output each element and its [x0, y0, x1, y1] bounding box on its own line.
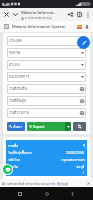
button[interactable]: Export options — [65, 122, 71, 131]
button[interactable]: Export — [27, 122, 65, 131]
button[interactable]: Navigation menu — [3, 23, 10, 30]
button[interactable]: Edit — [77, 36, 90, 49]
button[interactable]: Chat on LINE — [3, 165, 12, 174]
staticText: ชลบุรี — [76, 164, 85, 169]
button[interactable]: จังหวัด — [7, 48, 86, 58]
staticText: วันที่สิ้นสุด — [9, 98, 80, 104]
staticText: e-mis.malaria.org — [25, 16, 52, 20]
staticText: อำเภอ — [8, 171, 18, 173]
staticText: วันที่เริ่มต้น — [9, 86, 80, 92]
staticText: กรุงเทพมหานคร — [61, 157, 85, 162]
staticText: หน่วยบริการ — [9, 74, 81, 80]
staticText: จังหวัด — [8, 164, 18, 169]
button[interactable]: Open in browser — [75, 10, 84, 19]
staticText: รายชื่อ — [8, 143, 19, 148]
button[interactable]: More options — [11, 10, 20, 19]
staticText: Malaria Information System — [12, 24, 66, 29]
staticText: Export — [33, 124, 45, 129]
button[interactable]: Back — [67, 188, 79, 200]
button[interactable]: Menu — [84, 11, 91, 18]
button[interactable]: Table settings — [73, 122, 86, 131]
button[interactable]: Close — [2, 10, 11, 19]
button[interactable]: วันที่รายงาน — [7, 108, 86, 118]
button[interactable]: Language — [76, 23, 83, 30]
button[interactable]: วันที่เริ่มต้น — [7, 84, 86, 94]
button[interactable]: รายชื่อ — [6, 140, 87, 176]
staticText: ประเทศ — [9, 38, 81, 44]
staticText: วันที่รับรู้เชื้อราย — [8, 150, 32, 155]
staticText: จังหวัด — [9, 50, 81, 56]
staticText: รหัสโรค — [8, 157, 21, 162]
staticText: An unhandled error has occurred. — [2, 181, 56, 186]
button[interactable]: อำเภอ — [7, 60, 86, 70]
staticText: ชลบุรี — [76, 171, 85, 173]
staticText: Malaria Informa... — [21, 10, 57, 16]
button[interactable]: ค้นหา — [7, 122, 25, 131]
staticText: อำเภอ — [9, 62, 81, 68]
button[interactable]: Account — [83, 23, 90, 30]
staticText: วันที่รายงาน — [9, 110, 80, 116]
button[interactable]: Recent apps — [14, 188, 26, 200]
button[interactable]: ประเทศ — [7, 36, 86, 46]
button[interactable]: Home — [41, 188, 53, 200]
staticText: 1 — [83, 143, 85, 148]
button[interactable]: Reload — [57, 181, 68, 186]
staticText: 9:41 — [2, 2, 10, 7]
staticText: 20/06/2566 — [66, 150, 85, 155]
button[interactable]: วันที่สิ้นสุด — [7, 96, 86, 106]
staticText: ค้นหา — [13, 124, 23, 130]
button[interactable]: Share — [66, 10, 75, 19]
button[interactable]: หน่วยบริการ — [7, 72, 86, 82]
staticText: Reload — [57, 181, 68, 186]
button[interactable]: Dismiss — [85, 180, 91, 186]
